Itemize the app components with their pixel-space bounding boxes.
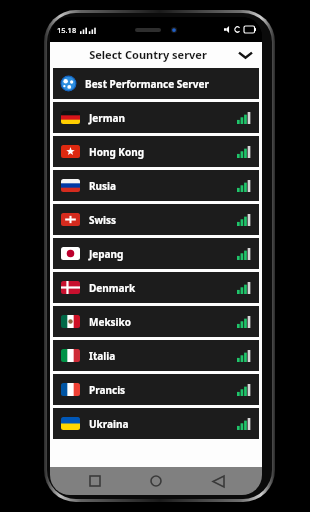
button[interactable]: Back	[201, 467, 235, 495]
button[interactable]: Swiss	[53, 204, 259, 235]
button[interactable]: Jerman	[53, 102, 259, 133]
staticText: Italia	[89, 349, 237, 363]
staticText: Ukraina	[89, 417, 237, 431]
button[interactable]: Best Performance Server	[53, 68, 259, 99]
staticText: Select Country server	[68, 47, 228, 62]
staticText: Best Performance Server	[85, 77, 209, 91]
button[interactable]: Recent apps	[78, 467, 112, 495]
button[interactable]: Hong Kong	[53, 136, 259, 167]
staticText: Meksiko	[89, 315, 237, 329]
button[interactable]: Home	[139, 467, 173, 495]
staticText: Denmark	[89, 281, 237, 295]
button[interactable]: Italia	[53, 340, 259, 371]
other: Expand country list	[228, 42, 262, 67]
button[interactable]: Rusia	[53, 170, 259, 201]
button[interactable]: Select Country server	[50, 42, 262, 67]
staticText: Hong Kong	[89, 145, 237, 159]
staticText: 15.18	[57, 25, 77, 35]
button[interactable]: Denmark	[53, 272, 259, 303]
button[interactable]: Jepang	[53, 238, 259, 269]
staticText: Prancis	[89, 383, 237, 397]
button[interactable]: Ukraina	[53, 408, 259, 439]
staticText: Swiss	[89, 213, 237, 227]
button[interactable]: Meksiko	[53, 306, 259, 337]
staticText: Jepang	[89, 247, 237, 261]
button[interactable]: Prancis	[53, 374, 259, 405]
staticText: Rusia	[89, 179, 237, 193]
staticText: Jerman	[89, 111, 237, 125]
